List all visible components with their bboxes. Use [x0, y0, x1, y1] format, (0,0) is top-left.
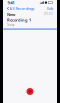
staticText: Edit — [47, 6, 53, 11]
staticText: New Recording 1 — [7, 12, 31, 22]
staticText: All Recordings — [9, 6, 34, 11]
button[interactable]: Record — [24, 86, 35, 97]
button[interactable]: Edit — [46, 5, 54, 11]
staticText: Today — [7, 23, 14, 27]
staticText: 9:41 — [7, 0, 14, 5]
button[interactable]: Back — [6, 5, 35, 11]
staticText: 00:03 — [44, 12, 53, 15]
